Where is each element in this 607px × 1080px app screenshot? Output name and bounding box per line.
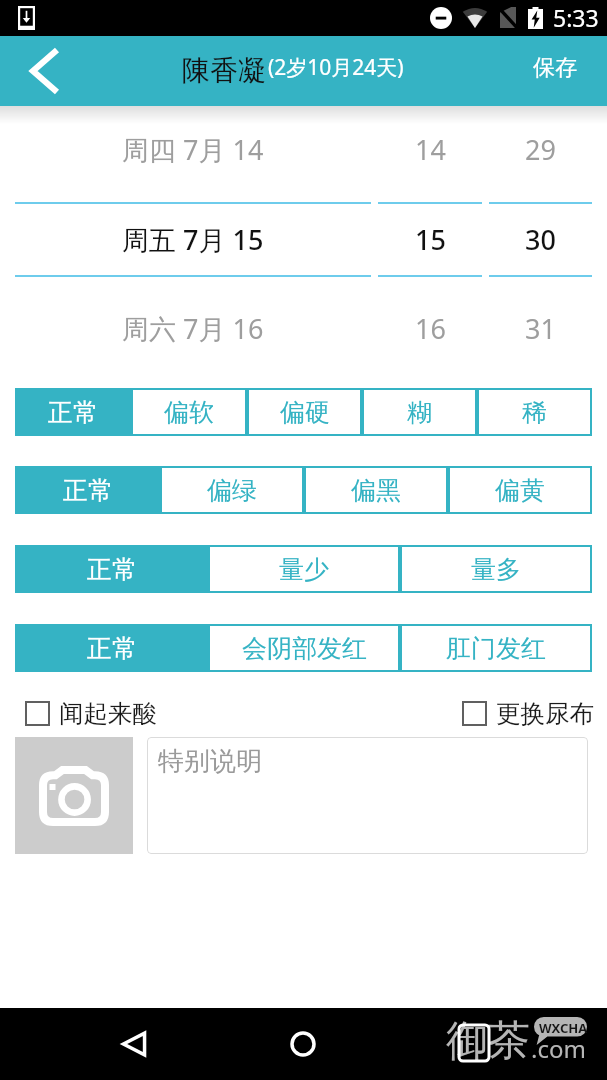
staticText: 30: [525, 221, 556, 258]
staticText: 29: [525, 131, 556, 168]
staticText: 5:33: [553, 2, 599, 33]
staticText: 御茶: [446, 1015, 530, 1068]
button[interactable]: 偏软: [131, 388, 247, 436]
button[interactable]: 量少: [208, 545, 400, 593]
button[interactable]: 周六 7月 16: [15, 277, 371, 373]
staticText: 陳香凝: [182, 53, 266, 88]
button[interactable]: 特别说明: [147, 737, 588, 854]
staticText: 偏黑: [351, 475, 401, 506]
button[interactable]: 偏黑: [304, 466, 448, 514]
staticText: 周五 7月 15: [122, 221, 264, 258]
staticText: 会阴部发红: [242, 633, 367, 664]
button[interactable]: 闻起来酸: [25, 698, 157, 729]
button[interactable]: 偏绿: [160, 466, 304, 514]
staticText: 31: [525, 310, 556, 347]
staticText: 偏硬: [280, 397, 330, 428]
staticText: 正常: [87, 554, 137, 585]
button[interactable]: 30: [489, 204, 592, 275]
staticText: 糊: [407, 397, 432, 428]
button[interactable]: 周五 7月 15: [15, 204, 371, 275]
button[interactable]: 偏黄: [448, 466, 592, 514]
button[interactable]: 偏硬: [247, 388, 362, 436]
button[interactable]: Home: [279, 1020, 327, 1068]
staticText: 正常: [48, 397, 98, 428]
button[interactable]: 糊: [362, 388, 477, 436]
button[interactable]: 正常: [15, 388, 131, 436]
button[interactable]: 正常: [15, 466, 160, 514]
staticText: 特别说明: [158, 745, 262, 778]
button[interactable]: Back: [0, 36, 86, 106]
staticText: 14: [415, 131, 446, 168]
button[interactable]: 正常: [15, 545, 208, 593]
staticText: 量多: [471, 554, 521, 585]
button[interactable]: 肛门发红: [400, 624, 592, 672]
button[interactable]: Add photo: [15, 737, 133, 854]
staticText: 稀: [522, 397, 547, 428]
staticText: .com: [531, 1032, 586, 1065]
button[interactable]: Back: [110, 1020, 158, 1068]
button[interactable]: 会阴部发红: [208, 624, 400, 672]
button[interactable]: 15: [378, 204, 482, 275]
button[interactable]: 周四 7月 14: [15, 106, 371, 202]
staticText: 偏黄: [495, 475, 545, 506]
button[interactable]: 29: [489, 106, 592, 202]
button[interactable]: 正常: [15, 624, 208, 672]
staticText: 周六 7月 16: [122, 310, 264, 347]
button[interactable]: 31: [489, 277, 592, 373]
button[interactable]: 量多: [400, 545, 592, 593]
staticText: WXCHA: [539, 1019, 588, 1037]
staticText: (2岁10月24天): [268, 53, 404, 82]
staticText: 更换尿布: [496, 698, 594, 729]
staticText: 正常: [63, 475, 113, 506]
staticText: 偏软: [164, 397, 214, 428]
button[interactable]: 稀: [477, 388, 592, 436]
button[interactable]: 14: [378, 106, 482, 202]
button[interactable]: 更换尿布: [462, 698, 594, 729]
staticText: 正常: [87, 633, 137, 664]
staticText: 16: [415, 310, 446, 347]
button[interactable]: 保存: [519, 40, 591, 96]
staticText: 肛门发红: [446, 633, 546, 664]
staticText: 保存: [533, 54, 577, 82]
staticText: 偏绿: [207, 475, 257, 506]
staticText: 量少: [279, 554, 329, 585]
staticText: 闻起来酸: [59, 698, 157, 729]
staticText: 周四 7月 14: [122, 131, 264, 168]
button[interactable]: 16: [378, 277, 482, 373]
staticText: 15: [415, 221, 446, 258]
